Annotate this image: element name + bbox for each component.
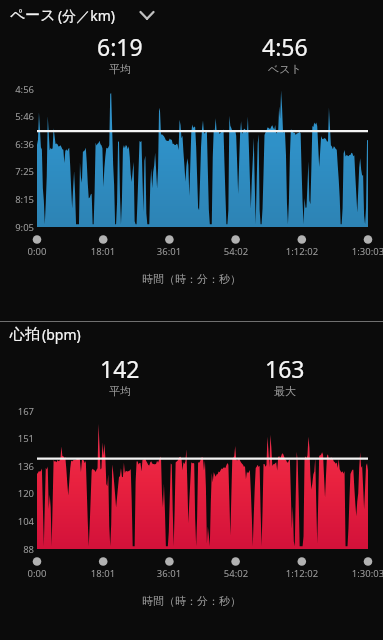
staticText: ペース — [10, 6, 56, 25]
staticText: 54:02 — [215, 567, 257, 580]
staticText: 4:56 — [262, 31, 308, 62]
staticText: (bpm) — [42, 325, 81, 344]
button[interactable]: ペース — [8, 3, 161, 27]
staticText: 8:15 — [4, 193, 34, 206]
staticText: 4:56 — [4, 83, 34, 96]
staticText: 54:02 — [215, 245, 257, 258]
staticText: 142 — [100, 353, 140, 384]
staticText: 1:12:02 — [281, 245, 323, 258]
staticText: 9:05 — [4, 221, 34, 234]
staticText: 心拍 — [10, 325, 40, 344]
staticText: 151 — [4, 432, 34, 445]
staticText: 0:00 — [16, 245, 58, 258]
staticText: 平均 — [109, 384, 131, 398]
staticText: 時間（時：分：秒） — [0, 272, 383, 286]
staticText: ベスト — [268, 62, 302, 76]
staticText: 18:01 — [82, 245, 124, 258]
staticText: 163 — [265, 353, 305, 384]
staticText: 1:30:03 — [347, 567, 383, 580]
staticText: 18:01 — [82, 567, 124, 580]
staticText: 167 — [4, 405, 34, 418]
staticText: 1:30:03 — [347, 245, 383, 258]
staticText: 36:01 — [148, 567, 190, 580]
staticText: 6:19 — [97, 31, 143, 62]
staticText: 平均 — [109, 62, 131, 76]
staticText: 136 — [4, 460, 34, 473]
staticText: 1:12:02 — [281, 567, 323, 580]
button[interactable]: 心拍 — [8, 325, 83, 344]
staticText: 最大 — [274, 384, 296, 398]
staticText: 5:46 — [4, 110, 34, 123]
staticText: 時間（時：分：秒） — [0, 594, 383, 608]
staticText: 36:01 — [148, 245, 190, 258]
staticText: 6:36 — [4, 138, 34, 151]
button[interactable]: メトリックを変更 — [135, 3, 159, 27]
staticText: 120 — [4, 487, 34, 500]
staticText: 88 — [4, 543, 34, 556]
staticText: (分／km) — [58, 6, 115, 25]
staticText: 0:00 — [16, 567, 58, 580]
staticText: 104 — [4, 515, 34, 528]
staticText: 7:25 — [4, 165, 34, 178]
